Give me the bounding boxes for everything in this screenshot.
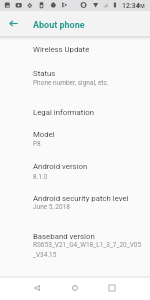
button[interactable]: Home (63, 276, 87, 300)
button[interactable]: Android version (0, 158, 150, 184)
other: Status bar icons (0, 0, 150, 11)
staticText: Baseband version (33, 232, 95, 241)
staticText: P8 (33, 140, 41, 148)
button[interactable]: Baseband version (0, 228, 150, 254)
staticText: Android version (33, 162, 88, 171)
staticText: Status (33, 69, 56, 78)
staticText: June 5, 2018 (33, 203, 70, 211)
staticText: Android security patch level (33, 194, 129, 203)
staticText: RS653_V21_G4_W18_L1_3_7_20_V05 _V34.15 (33, 241, 142, 258)
button[interactable]: Legal information (0, 104, 150, 122)
staticText: Model (33, 130, 55, 139)
button[interactable]: Back (4, 14, 23, 33)
staticText: Wireless Update (33, 45, 90, 54)
button[interactable]: Android security patch level (0, 190, 150, 216)
staticText: About phone (33, 20, 85, 31)
staticText: 12:34 (122, 2, 140, 10)
staticText: Legal information (33, 108, 95, 117)
button[interactable]: Back (25, 276, 49, 300)
button[interactable]: Recent apps (100, 276, 124, 300)
button[interactable]: Model (0, 126, 150, 152)
staticText: Phone number, signal, etc. (33, 79, 109, 87)
staticText: PM (137, 3, 145, 9)
button[interactable]: Status (0, 65, 150, 91)
button[interactable]: Wireless Update (0, 41, 150, 59)
staticText: 8.1.0 (33, 173, 48, 181)
